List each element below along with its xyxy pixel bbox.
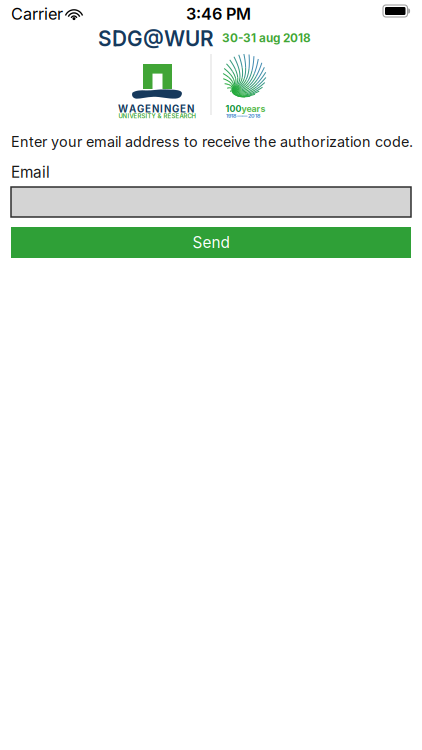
- staticText: 100: [225, 103, 241, 114]
- staticText: W A G E N I N G E N: [118, 103, 194, 115]
- staticText: 3:46 PM: [186, 4, 251, 24]
- staticText: Email: [11, 163, 50, 182]
- button[interactable]: Send: [11, 227, 411, 258]
- staticText: U N I V E R S I T Y & R E S E A R C H: [118, 112, 195, 120]
- staticText: SDG@WUR: [98, 26, 214, 51]
- button[interactable]: Carrier: [11, 4, 82, 24]
- staticText: years: [241, 103, 265, 114]
- staticText: Send: [192, 233, 229, 252]
- staticText: 1918 —— 2018: [226, 112, 260, 119]
- staticText: 30-31 aug 2018: [222, 31, 311, 45]
- staticText: Carrier: [11, 4, 63, 24]
- staticText: Enter your email address to receive the …: [11, 133, 413, 150]
